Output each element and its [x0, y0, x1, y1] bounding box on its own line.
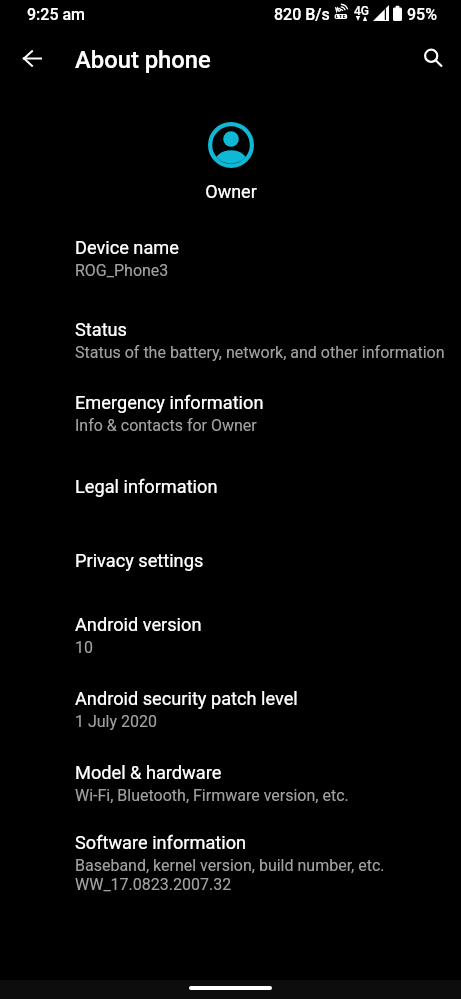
button[interactable]: Status [0, 300, 461, 372]
staticText: Status [75, 319, 128, 340]
button[interactable]: Search [415, 40, 453, 78]
button[interactable]: Software information [0, 820, 461, 904]
staticText: Baseband, kernel version, build number, … [75, 856, 385, 894]
staticText: 95% [407, 5, 437, 24]
staticText: Wi-Fi, Bluetooth, Firmware version, etc. [75, 786, 349, 805]
staticText: ROG_Phone3 [75, 261, 169, 280]
staticText: Android security patch level [75, 688, 298, 709]
button[interactable]: Android version [0, 600, 461, 672]
button[interactable]: Android security patch level [0, 674, 461, 746]
staticText: 10 [75, 638, 93, 657]
button[interactable]: Model & hardware [0, 748, 461, 818]
staticText: 1 July 2020 [75, 712, 158, 731]
staticText: Device name [75, 237, 179, 258]
staticText: Status of the battery, network, and othe… [75, 343, 445, 362]
staticText: Model & hardware [75, 762, 222, 783]
button[interactable]: Device name [0, 220, 461, 292]
staticText: 4G [354, 4, 369, 18]
button[interactable]: Emergency information [0, 376, 461, 454]
staticText: Android version [75, 614, 202, 635]
staticText: Emergency information [75, 392, 264, 413]
button[interactable]: Privacy settings [0, 532, 461, 596]
staticText: About phone [75, 46, 211, 74]
button[interactable]: Legal information [0, 458, 461, 522]
staticText: Info & contacts for Owner [75, 416, 257, 435]
staticText: Privacy settings [75, 550, 204, 571]
staticText: 9:25 am [27, 5, 86, 24]
staticText: Owner [205, 181, 257, 202]
staticText: Software information [75, 832, 247, 853]
button[interactable]: Owner [0, 110, 461, 204]
staticText: 820 B/s [274, 5, 330, 24]
button[interactable]: Back [13, 39, 51, 77]
staticText: Legal information [75, 476, 218, 497]
